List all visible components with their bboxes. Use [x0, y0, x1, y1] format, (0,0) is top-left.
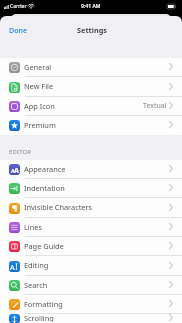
staticText: Premium: [24, 120, 56, 130]
staticText: Carrier: [10, 3, 27, 10]
staticText: New File: [24, 81, 54, 91]
button[interactable]: Indentation: [0, 179, 182, 198]
button[interactable]: Lines: [0, 218, 182, 237]
button[interactable]: Premium: [0, 116, 182, 135]
staticText: Textual: [143, 101, 167, 111]
button[interactable]: Scrolling: [0, 314, 182, 323]
staticText: 9:41 AM: [81, 3, 101, 10]
button[interactable]: General: [0, 58, 182, 77]
staticText: Settings: [77, 25, 107, 35]
staticText: Invisible Characters: [24, 202, 93, 212]
button[interactable]: A: [0, 256, 182, 276]
button[interactable]: Search: [0, 276, 182, 295]
staticText: A: [11, 167, 15, 174]
button[interactable]: Invisible Characters: [0, 198, 182, 218]
staticText: Lines: [24, 222, 43, 232]
button[interactable]: Page Guide: [0, 237, 182, 256]
button[interactable]: Formatting: [0, 295, 182, 314]
staticText: EDITOR: [9, 148, 32, 156]
staticText: General: [24, 62, 52, 72]
staticText: Formatting: [24, 299, 63, 309]
button[interactable]: New File: [0, 77, 182, 97]
button[interactable]: App Icon: [0, 97, 182, 116]
staticText: Search: [24, 280, 48, 290]
staticText: Page Guide: [24, 241, 64, 251]
staticText: A: [10, 262, 15, 272]
staticText: Appearance: [24, 164, 66, 174]
staticText: Editing: [24, 260, 49, 270]
staticText: Scrolling: [24, 313, 54, 322]
staticText: A: [14, 165, 19, 175]
staticText: App Icon: [24, 101, 55, 111]
button[interactable]: A: [0, 160, 182, 179]
button[interactable]: Done: [0, 21, 35, 39]
staticText: Indentation: [24, 183, 65, 193]
